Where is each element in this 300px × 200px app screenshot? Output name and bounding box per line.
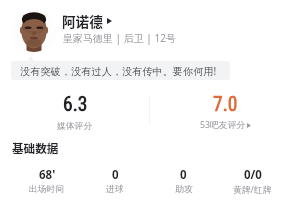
button[interactable]: Player photo: [12, 8, 56, 52]
staticText: 助攻: [175, 184, 193, 195]
staticText: 媒体评分: [57, 121, 93, 132]
staticText: 阿诺德: [62, 11, 103, 31]
staticText: 0: [180, 167, 187, 183]
staticText: 黄牌/红牌: [233, 184, 272, 196]
staticText: 7.0: [213, 93, 238, 116]
staticText: 68': [39, 167, 56, 183]
staticText: 基础数据: [12, 140, 59, 157]
staticText: 皇家马德里 | 后卫 | 12号: [63, 31, 176, 45]
button[interactable]: 7.0: [150, 93, 300, 131]
staticText: 没有突破，没有过人，没有传中。要你何用!: [20, 64, 217, 78]
staticText: 0/0: [244, 167, 262, 183]
staticText: 进球: [106, 184, 124, 195]
staticText: 6.3: [63, 93, 88, 116]
staticText: 出场时间: [29, 184, 65, 195]
staticText: 0: [112, 167, 119, 183]
staticText: 53吧友评分: [200, 119, 246, 131]
button[interactable]: 阿诺德: [62, 11, 112, 31]
